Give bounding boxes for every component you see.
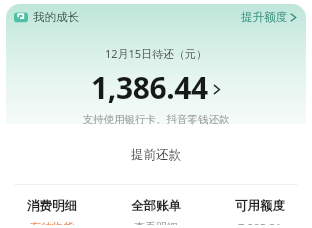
button[interactable]: 提升额度 bbox=[240, 8, 298, 26]
staticText: 支持使用银行卡、抖音零钱还款 bbox=[0, 113, 312, 126]
staticText: 有待收货 bbox=[30, 220, 74, 225]
staticText: 7,285.31 bbox=[238, 220, 282, 225]
staticText: 我的成长 bbox=[33, 10, 79, 24]
button[interactable]: 消费明细 bbox=[0, 195, 104, 228]
staticText: 1,386.44 bbox=[91, 67, 208, 108]
staticText: 查看明细 bbox=[134, 220, 178, 225]
button[interactable]: 提前还款 bbox=[18, 140, 294, 170]
button[interactable]: 可用额度 bbox=[208, 195, 312, 228]
staticText: 全部账单 bbox=[131, 198, 181, 214]
staticText: 可用额度 bbox=[235, 198, 285, 214]
staticText: 提前还款 bbox=[131, 147, 181, 163]
other: 我的成长 bbox=[14, 10, 28, 24]
button[interactable]: 1,386.44 bbox=[0, 67, 312, 108]
staticText: 提升额度 bbox=[241, 10, 287, 24]
staticText: 消费明细 bbox=[27, 198, 77, 214]
staticText: 12月15日待还（元） bbox=[0, 46, 312, 61]
button[interactable]: 我的成长 bbox=[14, 8, 79, 26]
button[interactable]: 全部账单 bbox=[104, 195, 208, 228]
